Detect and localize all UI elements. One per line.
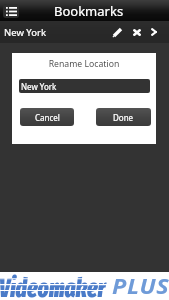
- staticText: New York: [4, 26, 46, 39]
- staticText: Rename Location: [12, 58, 156, 70]
- staticText: Videomaker: [0, 272, 106, 300]
- button[interactable]: Edit: [107, 23, 127, 41]
- button[interactable]: Delete: [128, 23, 146, 41]
- staticText: New York: [21, 81, 57, 92]
- staticText: Done: [113, 112, 134, 123]
- button[interactable]: Menu: [3, 4, 19, 18]
- button[interactable]: New York: [19, 79, 150, 93]
- button[interactable]: Cancel: [20, 108, 74, 126]
- button[interactable]: New York: [0, 21, 169, 43]
- staticText: PLUS: [112, 272, 169, 300]
- button[interactable]: Open: [145, 23, 162, 41]
- staticText: Cancel: [35, 112, 60, 123]
- staticText: Bookmarks: [54, 2, 124, 20]
- button[interactable]: Done: [96, 108, 151, 126]
